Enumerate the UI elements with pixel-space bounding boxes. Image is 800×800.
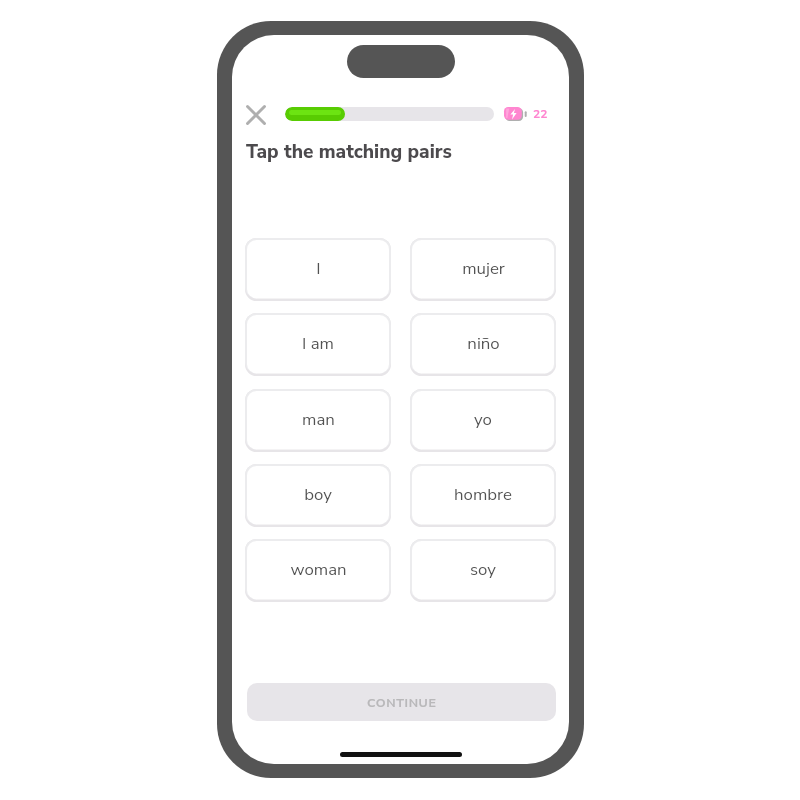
staticText: mujer	[462, 257, 505, 280]
staticText: woman	[290, 558, 347, 581]
button[interactable]: yo	[410, 389, 556, 452]
staticText: niño	[467, 332, 500, 355]
button[interactable]: Close	[246, 105, 266, 125]
button[interactable]: mujer	[410, 238, 556, 301]
staticText: yo	[474, 408, 492, 431]
button[interactable]: man	[245, 389, 391, 452]
staticText: Tap the matching pairs	[246, 139, 452, 165]
staticText: 22	[533, 106, 548, 122]
staticText: CONTINUE	[367, 694, 437, 711]
staticText: I	[316, 257, 321, 280]
staticText: I am	[302, 332, 334, 355]
button[interactable]: boy	[245, 464, 391, 527]
button[interactable]: niño	[410, 313, 556, 376]
button[interactable]: CONTINUE	[247, 683, 556, 721]
staticText: boy	[304, 483, 332, 506]
staticText: man	[302, 408, 335, 431]
button[interactable]: woman	[245, 539, 391, 602]
button[interactable]: I	[245, 238, 391, 301]
button[interactable]: I am	[245, 313, 391, 376]
staticText: soy	[470, 558, 496, 581]
staticText: hombre	[454, 483, 512, 506]
button[interactable]: soy	[410, 539, 556, 602]
button[interactable]: hombre	[410, 464, 556, 527]
